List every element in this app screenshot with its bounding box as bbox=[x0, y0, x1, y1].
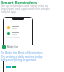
button[interactable] bbox=[7, 32, 32, 35]
staticText: Set up reminders and never miss an impor… bbox=[1, 4, 50, 14]
staticText: Smart Reminders bbox=[1, 0, 38, 6]
button[interactable] bbox=[7, 26, 32, 29]
staticText: To Make the Most of Reminders Try settin… bbox=[1, 51, 43, 61]
staticText: Make list bbox=[7, 45, 18, 49]
